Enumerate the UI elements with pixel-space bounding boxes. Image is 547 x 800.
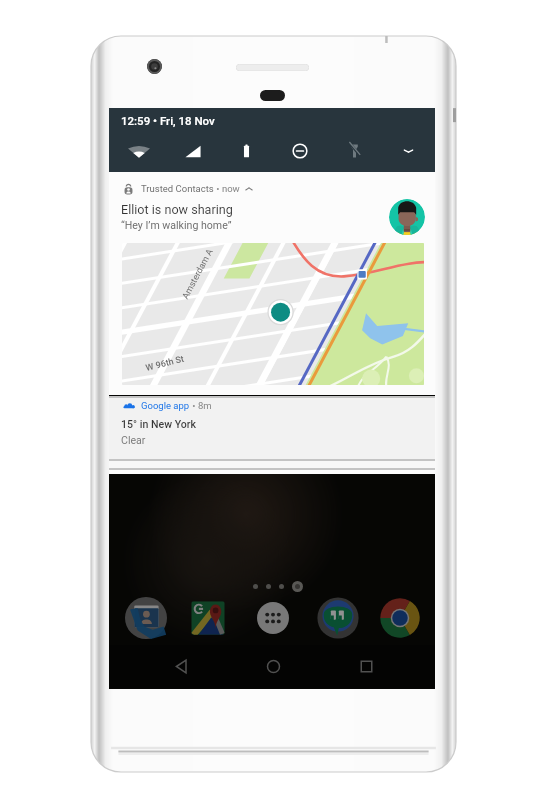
staticText: “Hey I’m walking home”	[121, 219, 232, 231]
staticText: Trusted Contacts	[141, 183, 214, 194]
staticText: Amsterdam A	[180, 246, 216, 301]
button[interactable]: All apps	[249, 594, 297, 642]
button[interactable]: Home	[247, 645, 299, 688]
button[interactable]: Contacts	[122, 594, 170, 642]
button[interactable]: Mobile signal	[169, 131, 217, 171]
button[interactable]: Trusted Contacts	[109, 172, 435, 395]
button[interactable]: Do not disturb	[276, 131, 324, 171]
staticText: W 96th St	[145, 353, 186, 374]
button[interactable]: Hangouts	[314, 594, 362, 642]
staticText: • now	[214, 183, 240, 194]
button[interactable]: Back	[155, 645, 207, 688]
button[interactable]: Chrome	[376, 594, 424, 642]
staticText: Google app	[141, 400, 190, 411]
button[interactable]: Recent apps	[340, 645, 392, 688]
button[interactable]: Expand quick settings	[384, 131, 432, 171]
staticText: 12:59 • Fri, 18 Nov	[121, 114, 215, 127]
staticText: Clear	[121, 434, 146, 446]
button[interactable]: Maps	[184, 594, 232, 642]
button[interactable]: Wi-Fi	[115, 131, 163, 171]
staticText: 15° in New York	[121, 418, 197, 430]
staticText: • 8m	[190, 400, 212, 411]
button[interactable]: Battery	[222, 131, 270, 171]
button[interactable]: Flashlight	[330, 131, 378, 171]
staticText: Elliot is now sharing	[121, 202, 233, 217]
button[interactable]: Google app	[109, 398, 435, 459]
